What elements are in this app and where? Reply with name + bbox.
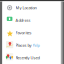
button[interactable]: Address: [3, 14, 61, 26]
staticText: Places by: [16, 43, 32, 48]
button[interactable]: Recently Used: [3, 51, 61, 64]
button[interactable]: My Location: [3, 1, 61, 14]
staticText: Yelp: [33, 43, 40, 48]
button[interactable]: Favorites: [3, 26, 61, 39]
staticText: My Location: [16, 5, 37, 10]
staticText: Address: [16, 18, 31, 23]
staticText: Favorites: [16, 30, 32, 35]
staticText: Recently Used: [16, 55, 40, 60]
button[interactable]: Places by: [3, 39, 61, 51]
